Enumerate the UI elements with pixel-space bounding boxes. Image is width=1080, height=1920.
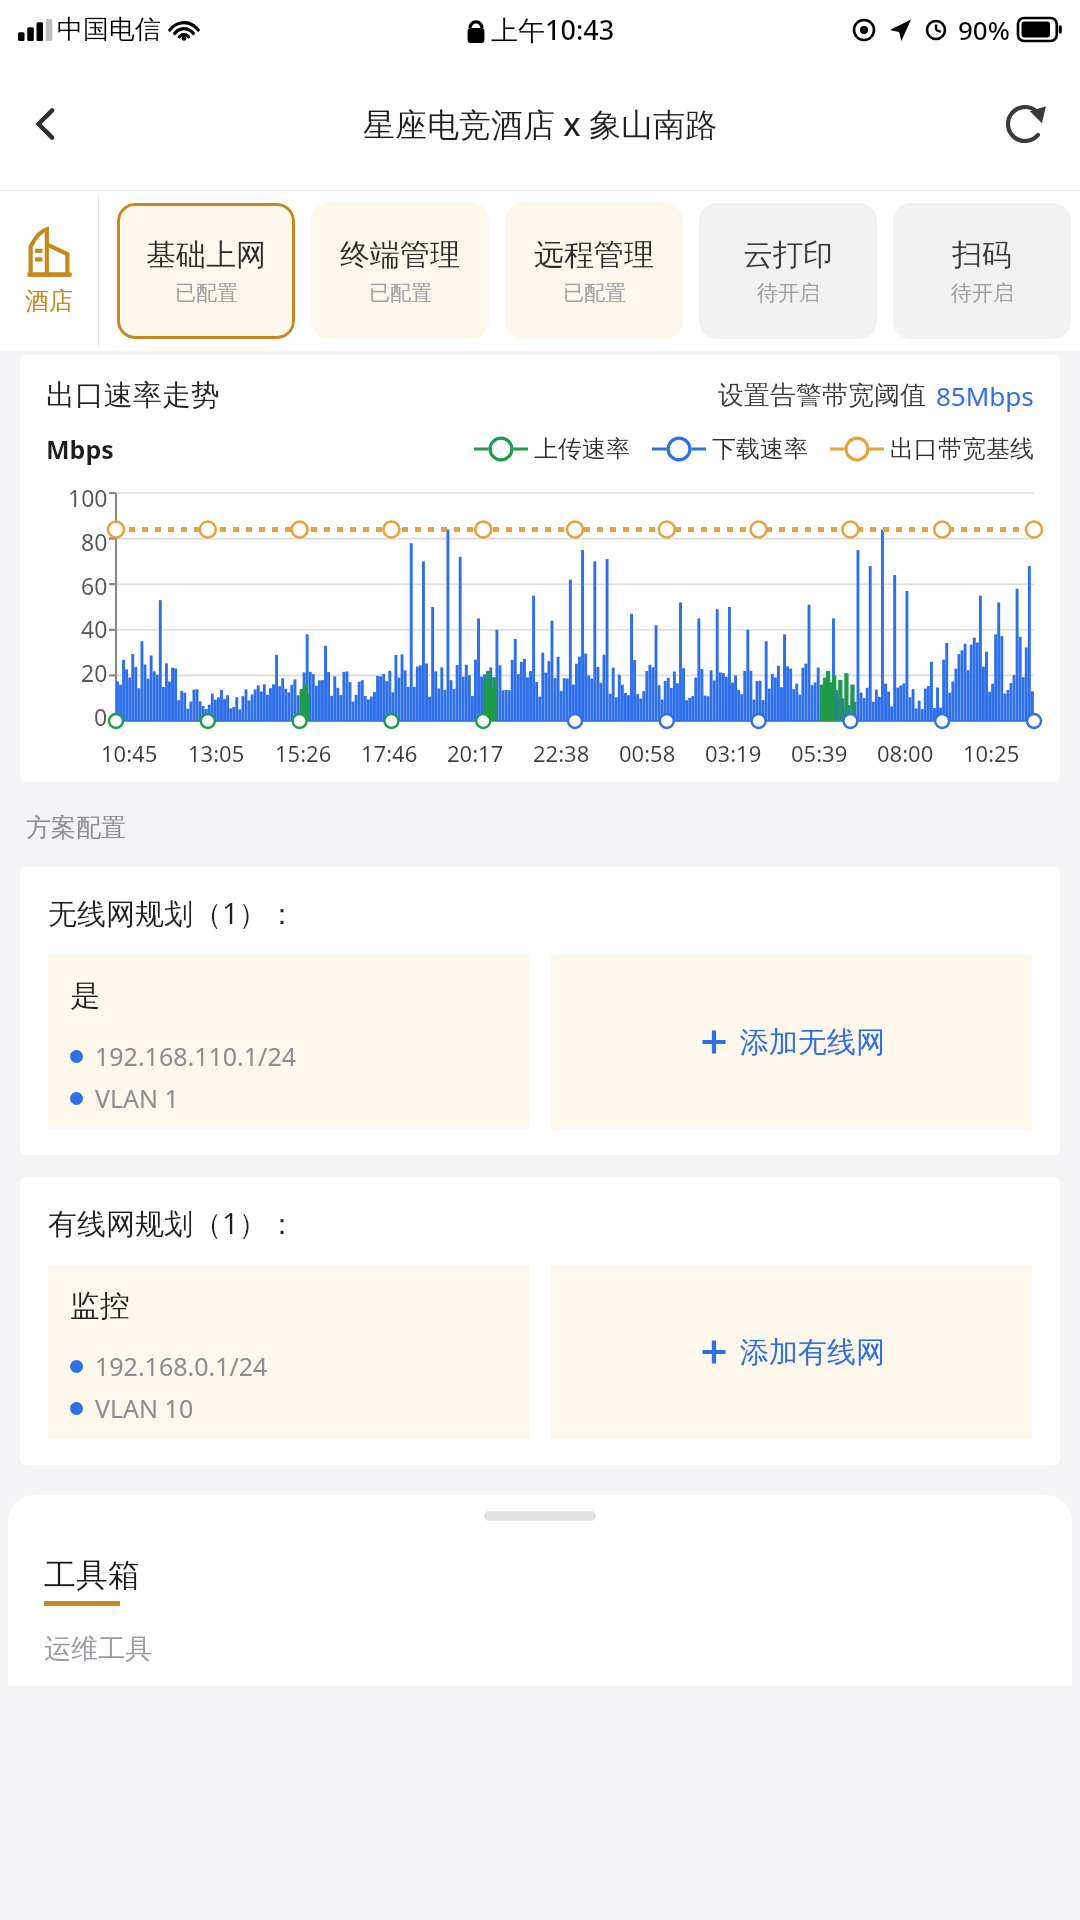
button[interactable]: 云打印 [699,203,877,339]
staticText: 工具箱 [44,1555,140,1595]
staticText: 08:00 [877,738,934,768]
staticText: 添加有线网 [740,1334,885,1371]
button[interactable]: 添加无线网 [551,955,1032,1129]
staticText: 20:17 [447,738,504,768]
staticText: 20 [81,657,108,688]
staticText: 100 [68,482,108,513]
button[interactable]: 监控 [48,1265,529,1439]
staticText: 设置告警带宽阈值 [718,379,926,412]
staticText: 13:05 [188,738,245,768]
staticText: VLAN 1 [95,1081,179,1115]
staticText: 上午10:43 [491,11,615,48]
staticText: 终端管理 [340,236,460,274]
staticText: Mbps [46,432,114,466]
staticText: 17:46 [361,738,418,768]
button[interactable]: 扫码 [893,203,1071,339]
staticText: 已配置 [175,280,238,306]
staticText: 15:26 [275,738,332,768]
staticText: 下载速率 [712,434,808,464]
staticText: 03:19 [705,738,762,768]
staticText: 待开启 [951,280,1014,306]
staticText: 云打印 [743,236,833,274]
button[interactable]: 基础上网 [117,203,295,339]
staticText: 待开启 [757,280,820,306]
staticText: 192.168.110.1/24 [95,1039,297,1073]
staticText: 00:58 [619,738,676,768]
staticText: 方案配置 [26,812,126,843]
staticText: 22:38 [533,738,590,768]
staticText: 10:45 [101,738,158,768]
staticText: 运维工具 [44,1632,152,1666]
staticText: 已配置 [369,280,432,306]
button[interactable]: 酒店 [0,191,98,351]
staticText: 60 [81,570,108,601]
button[interactable]: 远程管理 [505,203,683,339]
staticText: 192.168.0.1/24 [95,1349,268,1383]
staticText: 出口带宽基线 [890,434,1034,464]
staticText: 出口速率走势 [46,377,220,414]
staticText: 监控 [70,1287,130,1325]
staticText: 有线网规划（1）： [48,1203,297,1243]
staticText: 85Mbps [936,378,1034,413]
staticText: 远程管理 [534,236,654,274]
staticText: 添加无线网 [740,1024,885,1061]
button[interactable]: 添加有线网 [551,1265,1032,1439]
staticText: VLAN 10 [95,1391,194,1425]
staticText: 0 [94,701,108,732]
staticText: 已配置 [563,280,626,306]
staticText: 基础上网 [146,236,266,274]
staticText: 星座电竞酒店 x 象山南路 [363,102,718,146]
button[interactable]: Refresh [992,91,1058,157]
staticText: 90% [958,12,1010,47]
staticText: 05:39 [791,738,848,768]
button[interactable]: 终端管理 [311,203,489,339]
staticText: 中国电信 [57,13,161,46]
staticText: 10:25 [963,738,1020,768]
staticText: 80 [81,526,108,557]
staticText: 无线网规划（1）： [48,893,297,933]
button[interactable]: 设置告警带宽阈值 [718,378,1034,413]
button[interactable]: 是 [48,955,529,1129]
button[interactable]: Back [12,90,80,158]
staticText: 上传速率 [534,434,630,464]
staticText: 是 [70,977,100,1015]
staticText: 40 [81,613,108,644]
staticText: 酒店 [25,286,73,316]
staticText: 扫码 [952,236,1012,274]
